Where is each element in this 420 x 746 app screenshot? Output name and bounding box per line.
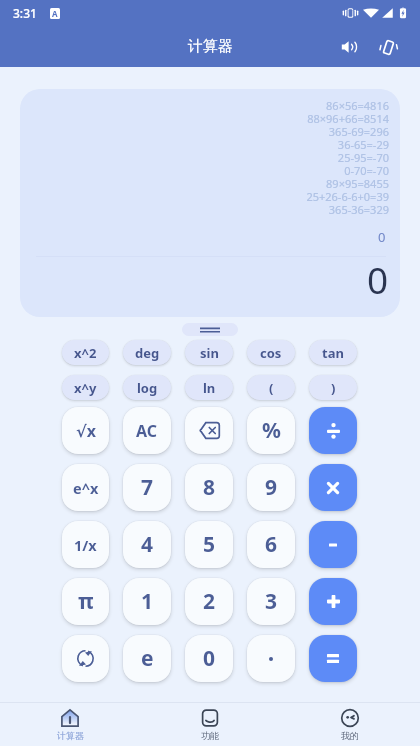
button[interactable]	[309, 464, 357, 511]
staticText: %	[262, 416, 281, 445]
staticText: AC	[136, 420, 158, 442]
staticText: e^x	[73, 478, 99, 498]
staticText: 1	[141, 587, 154, 616]
button[interactable]: 4	[123, 521, 171, 568]
staticText: tan	[322, 344, 344, 362]
staticText: 5	[203, 530, 216, 559]
staticText: sin	[200, 344, 219, 362]
button[interactable]	[309, 521, 357, 568]
button[interactable]: e	[123, 635, 171, 682]
staticText: log	[137, 379, 158, 397]
button[interactable]: 1	[123, 578, 171, 625]
button[interactable]: log	[123, 375, 171, 400]
staticText: 86×56=4816 88×96+66=8514 365-69=296 36-6…	[306, 100, 389, 217]
button[interactable]	[309, 578, 357, 625]
button[interactable]: √x	[62, 407, 109, 454]
staticText: )	[331, 379, 336, 397]
staticText: 2	[203, 587, 216, 616]
staticText: deg	[135, 344, 160, 362]
staticText: ln	[203, 379, 216, 397]
staticText: 3:31	[13, 5, 37, 21]
staticText: √x	[76, 420, 96, 442]
button[interactable]: x^2	[62, 340, 109, 365]
button[interactable]: 我的	[280, 703, 420, 746]
button[interactable]: 计算器	[0, 703, 140, 746]
staticText: x^2	[74, 344, 97, 362]
button[interactable]: 6	[247, 521, 295, 568]
button[interactable]: Sound	[334, 32, 364, 62]
staticText: 0	[367, 254, 389, 304]
button[interactable]: 功能	[140, 703, 280, 746]
button[interactable]: (	[247, 375, 295, 400]
staticText: 1/x	[74, 535, 97, 555]
button[interactable]: sin	[185, 340, 233, 365]
button[interactable]: x^y	[62, 375, 109, 400]
staticText: 9	[265, 473, 278, 502]
staticText: 我的	[341, 730, 359, 741]
button[interactable]: 1/x	[62, 521, 109, 568]
button[interactable]: 7	[123, 464, 171, 511]
staticText: 0	[378, 228, 386, 246]
button[interactable]: tan	[309, 340, 357, 365]
button[interactable]: deg	[123, 340, 171, 365]
button[interactable]: e^x	[62, 464, 109, 511]
staticText: 计算器	[57, 730, 84, 741]
staticText: 4	[141, 530, 154, 559]
button[interactable]: 2	[185, 578, 233, 625]
staticText: e	[141, 644, 154, 673]
button[interactable]: cos	[247, 340, 295, 365]
staticText: 计算器	[188, 37, 233, 56]
staticText: 6	[265, 530, 278, 559]
button[interactable]: %	[247, 407, 295, 454]
button[interactable]: Vibrate	[373, 32, 403, 62]
staticText: x^y	[74, 379, 97, 397]
staticText: 0	[203, 644, 216, 673]
staticText: 8	[203, 473, 216, 502]
staticText: cos	[260, 344, 282, 362]
button[interactable]: )	[309, 375, 357, 400]
button[interactable]: 0	[185, 635, 233, 682]
staticText: A	[52, 8, 58, 19]
button[interactable]	[247, 635, 295, 682]
button[interactable]: 9	[247, 464, 295, 511]
staticText: 功能	[201, 730, 219, 741]
button[interactable]: Delete	[185, 407, 233, 454]
staticText: (	[269, 379, 274, 397]
staticText: 7	[141, 473, 154, 502]
staticText: 3	[265, 587, 278, 616]
button[interactable]: 3	[247, 578, 295, 625]
button[interactable]: 5	[185, 521, 233, 568]
button[interactable]	[309, 635, 357, 682]
button[interactable]: AC	[123, 407, 171, 454]
button[interactable]	[309, 407, 357, 454]
button[interactable]: ln	[185, 375, 233, 400]
button[interactable]: Refresh	[62, 635, 109, 682]
button[interactable]: Drag handle	[182, 323, 238, 336]
staticText: π	[78, 587, 94, 616]
button[interactable]: π	[62, 578, 109, 625]
button[interactable]: 8	[185, 464, 233, 511]
